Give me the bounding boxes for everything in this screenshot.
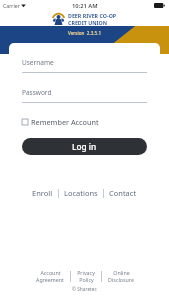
staticText: Version 2.3.5.1	[68, 30, 102, 36]
staticText: Remember Account	[31, 117, 99, 127]
staticText: 10:21 AM	[72, 2, 98, 10]
button[interactable]: Locations	[59, 186, 103, 200]
staticText: Policy	[79, 276, 94, 283]
staticText: DEER RIVER CO-OP	[68, 12, 117, 19]
button[interactable]: Remember Account	[22, 116, 99, 128]
button[interactable]: Online	[102, 268, 140, 284]
button[interactable]: Username	[22, 58, 147, 73]
button[interactable]: Account	[30, 268, 70, 284]
button[interactable]: Enroll	[27, 186, 58, 200]
staticText: Contact	[109, 188, 137, 198]
staticText: © Sharetec	[72, 286, 97, 293]
staticText: Agreement	[36, 276, 64, 283]
button[interactable]: Password	[22, 88, 147, 103]
button[interactable]: Privacy	[71, 268, 101, 284]
other: Wi-Fi signal	[21, 3, 26, 8]
staticText: Privacy	[77, 269, 95, 276]
staticText: Carrier	[3, 2, 20, 9]
staticText: Account	[40, 269, 61, 276]
staticText: CREDIT UNION	[68, 19, 108, 26]
other: Battery	[154, 3, 165, 8]
staticText: Enroll	[32, 188, 53, 198]
staticText: Online	[113, 269, 130, 276]
button[interactable]: Contact	[104, 186, 142, 200]
staticText: Password	[22, 88, 52, 97]
staticText: Username	[22, 58, 54, 67]
staticText: Locations	[64, 188, 98, 198]
button[interactable]: Log in	[22, 138, 147, 155]
staticText: Log in	[72, 141, 97, 152]
staticText: Disclosure	[108, 276, 134, 283]
